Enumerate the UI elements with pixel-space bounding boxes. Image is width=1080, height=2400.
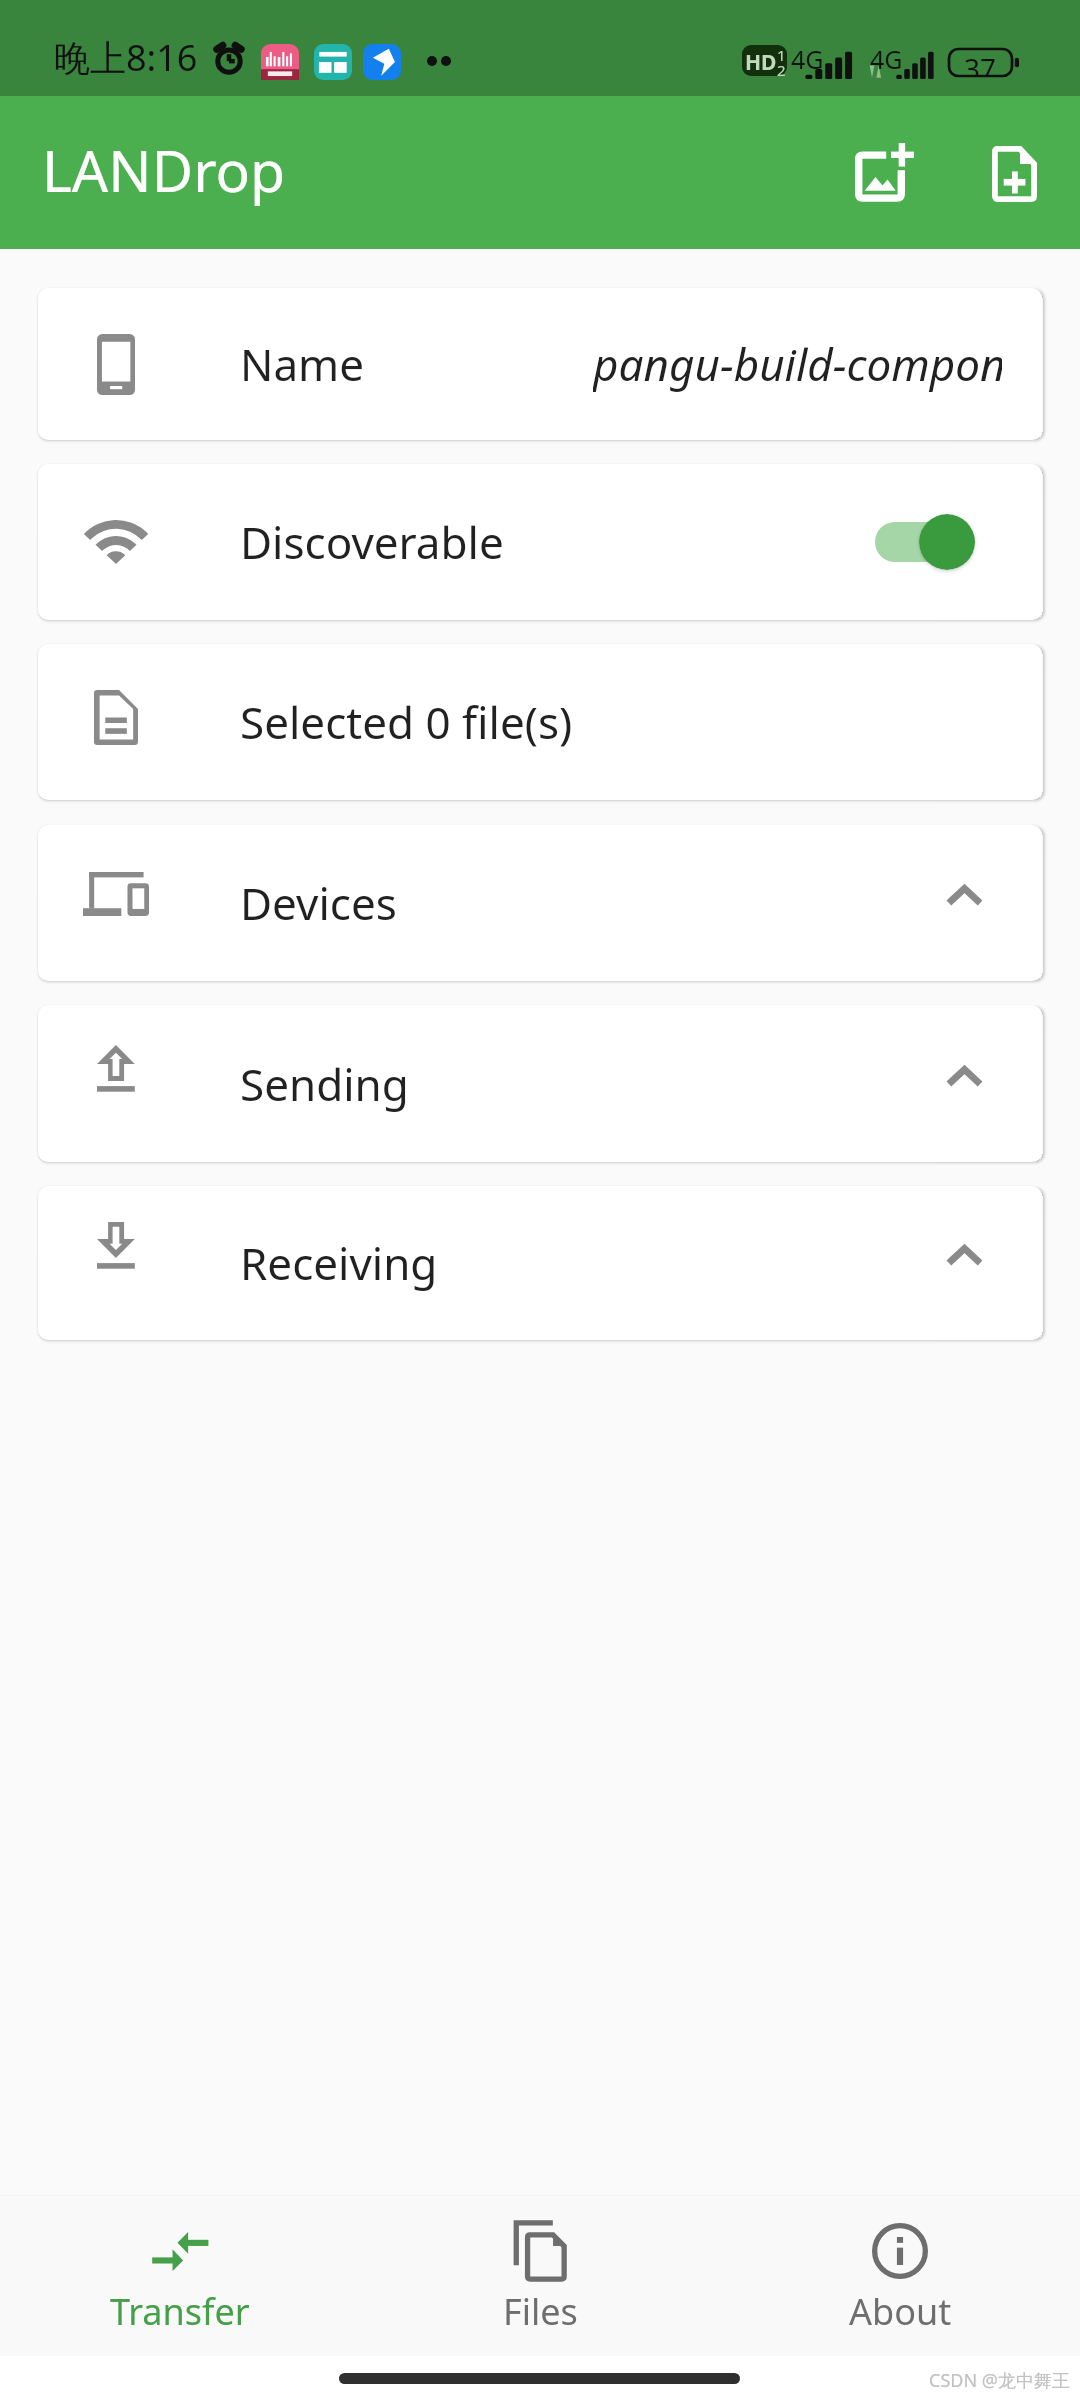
staticText: CSDN @龙中舞王 [929,2368,1070,2393]
button[interactable]: About [720,2195,1080,2356]
staticText: Devices [240,873,397,933]
staticText: Name [240,334,365,394]
button[interactable]: Files [360,2195,720,2356]
button[interactable]: Transfer [0,2195,360,2356]
button[interactable]: Collapse Devices [931,870,997,936]
button[interactable]: Add file [950,110,1078,238]
staticText: 4G [791,42,824,76]
staticText: LANDrop [42,131,286,209]
button[interactable]: Sending [38,1005,1042,1162]
staticText: HD [745,48,777,72]
staticText: Transfer [110,2287,250,2336]
button[interactable]: Selected 0 file(s) [38,644,1042,800]
staticText: 1 2 [777,45,786,76]
staticText: 37 [964,49,997,76]
button[interactable]: Toggle discoverable [870,511,980,573]
button[interactable]: Devices [38,825,1042,981]
button[interactable]: Add image [820,108,948,236]
staticText: Receiving [240,1233,438,1293]
button[interactable]: Collapse Receiving [931,1230,997,1296]
button[interactable]: Collapse Sending [931,1051,997,1117]
staticText: Discoverable [240,512,504,572]
staticText: 4G [870,42,903,76]
staticText: Selected 0 file(s) [240,692,573,752]
staticText: About [849,2287,952,2336]
button[interactable]: Discoverable [38,464,1042,620]
button[interactable]: Name [38,288,1042,440]
staticText: Files [503,2287,578,2336]
staticText: pangu-build-component [593,334,1002,394]
staticText: Sending [240,1054,409,1114]
button[interactable]: Receiving [38,1186,1042,1340]
staticText: 晚上8:16 [54,33,198,82]
